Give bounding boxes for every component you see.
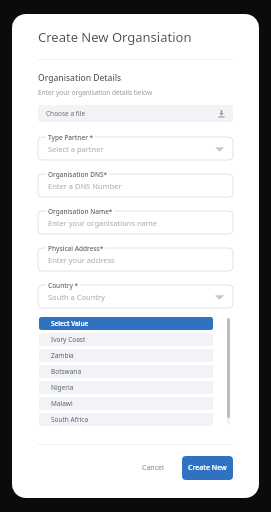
staticText: Zambia <box>51 351 74 360</box>
staticText: South Africa <box>51 415 89 424</box>
staticText: Create New Organsiation <box>38 28 192 46</box>
staticText: Create New <box>188 463 227 473</box>
staticText: Choose a file <box>46 109 86 118</box>
staticText: Type Partner * <box>48 133 94 142</box>
staticText: Nigeria <box>51 383 74 392</box>
button[interactable]: Zambia <box>39 349 213 362</box>
staticText: Organisation DNS* <box>48 170 108 179</box>
staticText: Cancel <box>142 463 164 473</box>
button[interactable]: Botswana <box>39 365 213 378</box>
button[interactable]: Create New <box>182 456 233 480</box>
staticText: Organisation Details <box>38 72 122 84</box>
button[interactable]: South Africa <box>39 413 213 426</box>
staticText: Enter a DNS Number <box>48 181 122 191</box>
button[interactable]: Select Value <box>39 317 213 330</box>
other: Upload file <box>217 109 226 118</box>
button[interactable] <box>38 207 233 234</box>
staticText: Enter your address <box>48 255 115 265</box>
staticText: Enter your organisation details below <box>38 88 153 97</box>
staticText: Botswana <box>51 367 82 376</box>
button[interactable]: Malawi <box>39 397 213 410</box>
staticText: Select a partner <box>48 144 104 154</box>
staticText: Physical Address* <box>48 244 104 253</box>
staticText: Ivory Coast <box>51 335 86 344</box>
other: Open Country * options <box>215 294 224 300</box>
button[interactable]: Choose a file <box>38 105 233 122</box>
staticText: South a Country <box>48 292 105 302</box>
button[interactable] <box>38 170 233 197</box>
button[interactable]: Ivory Coast <box>39 333 213 346</box>
button[interactable]: Nigeria <box>39 381 213 394</box>
other: Open Type Partner * options <box>215 146 224 152</box>
staticText: Organisation Name* <box>48 207 113 216</box>
button[interactable] <box>38 244 233 271</box>
staticText: Enter your organisations name <box>48 218 158 228</box>
staticText: Malawi <box>51 399 73 408</box>
button[interactable] <box>38 133 233 160</box>
staticText: Country * <box>48 281 79 290</box>
button[interactable] <box>38 281 233 308</box>
staticText: Select Value <box>51 319 89 328</box>
button[interactable]: Cancel <box>134 458 172 478</box>
